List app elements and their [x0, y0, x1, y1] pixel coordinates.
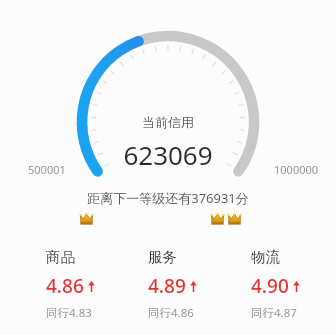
- staticText: 1000000: [274, 162, 319, 177]
- staticText: 服务: [148, 248, 177, 266]
- other: Level crown: [210, 211, 225, 226]
- staticText: 4.89: [148, 273, 186, 299]
- staticText: 同行4.83: [46, 305, 92, 321]
- staticText: 商品: [46, 248, 75, 266]
- other: Level crown: [227, 211, 242, 226]
- staticText: 623069: [123, 137, 213, 172]
- staticText: 距离下一等级还有376931分: [87, 189, 249, 207]
- staticText: 当前信用: [142, 114, 194, 130]
- other: Level crown: [79, 211, 94, 226]
- button[interactable]: 物流: [219, 246, 322, 323]
- staticText: 物流: [251, 248, 280, 266]
- staticText: 同行4.87: [251, 305, 297, 321]
- staticText: 500001: [28, 162, 66, 177]
- button[interactable]: 商品: [14, 246, 116, 323]
- staticText: 4.86: [46, 273, 84, 299]
- staticText: 同行4.86: [148, 305, 194, 321]
- staticText: 4.90: [251, 273, 289, 299]
- button[interactable]: 服务: [116, 246, 219, 323]
